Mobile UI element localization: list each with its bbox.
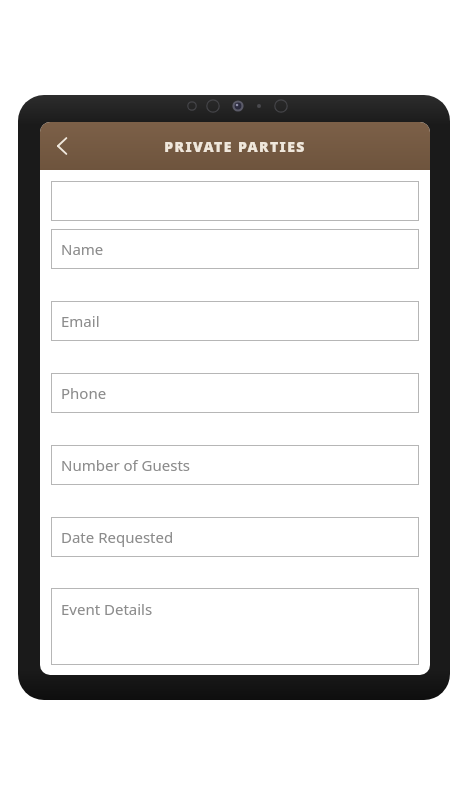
button[interactable] [51, 181, 419, 221]
button[interactable]: Back [40, 124, 84, 168]
button[interactable]: Date Requested [51, 517, 419, 557]
staticText: Name [61, 239, 104, 259]
button[interactable]: Number of Guests [51, 445, 419, 485]
button[interactable]: Phone [51, 373, 419, 413]
staticText: Date Requested [61, 527, 174, 547]
button[interactable]: Event Details [51, 588, 419, 665]
staticText: PRIVATE PARTIES [164, 137, 306, 156]
staticText: Number of Guests [61, 455, 191, 475]
staticText: Email [61, 311, 100, 331]
button[interactable]: Name [51, 229, 419, 269]
staticText: Phone [61, 383, 107, 403]
button[interactable]: Email [51, 301, 419, 341]
staticText: Event Details [61, 599, 153, 619]
